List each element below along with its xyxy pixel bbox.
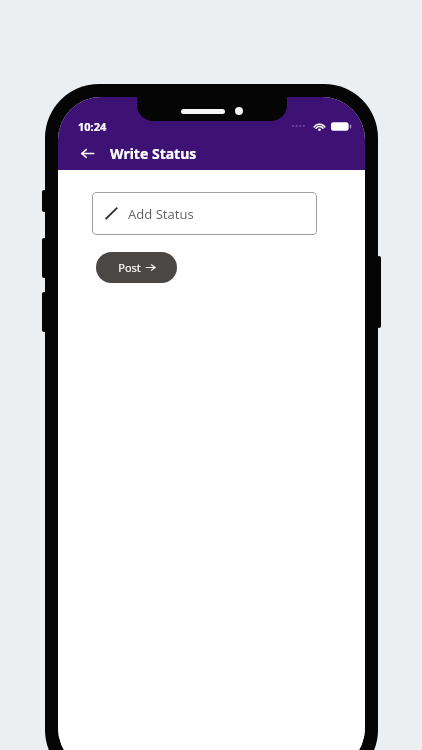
staticText: Post [118, 260, 141, 275]
staticText: Add Status [128, 205, 194, 223]
staticText: Write Status [110, 144, 197, 163]
button[interactable]: Back [74, 140, 100, 166]
button[interactable]: Add Status [92, 192, 317, 235]
button[interactable]: Post [96, 252, 177, 283]
staticText: 10:24 [78, 119, 107, 134]
